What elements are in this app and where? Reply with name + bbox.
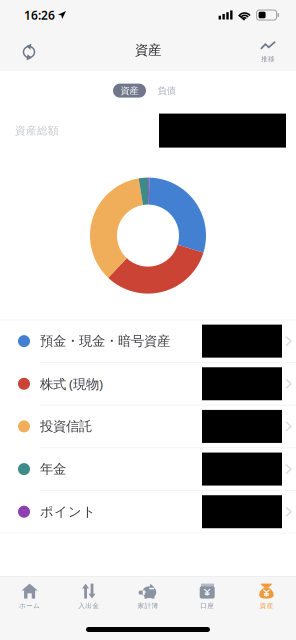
button[interactable]: 株式 (現物) xyxy=(0,363,296,405)
button[interactable]: 預金・現金・暗号資産 xyxy=(0,320,296,362)
staticText: 資産 xyxy=(120,85,138,96)
staticText: 負債 xyxy=(157,85,175,96)
button[interactable]: 負債 xyxy=(150,84,183,98)
staticText: 投資信託 xyxy=(40,418,92,435)
staticText: 資産 xyxy=(135,42,161,58)
button[interactable]: 年金 xyxy=(0,448,296,490)
staticText: 16:26 xyxy=(24,7,55,23)
staticText: 家計簿 xyxy=(137,602,158,610)
staticText: ホーム xyxy=(19,602,40,610)
button[interactable]: ホーム xyxy=(0,577,59,610)
staticText: 推移 xyxy=(261,55,275,63)
button[interactable]: Refresh xyxy=(7,30,51,70)
button[interactable]: 口座 xyxy=(178,577,237,610)
staticText: 口座 xyxy=(200,602,214,610)
staticText: 資産総額 xyxy=(15,124,59,137)
button[interactable]: 投資信託 xyxy=(0,405,296,447)
button[interactable]: 資産 xyxy=(237,577,296,610)
button[interactable]: 資産 xyxy=(113,84,146,98)
button[interactable]: 入出金 xyxy=(59,577,118,610)
button[interactable]: 推移 xyxy=(246,30,290,70)
staticText: 資産 xyxy=(259,602,273,610)
button[interactable]: ポイント xyxy=(0,491,296,533)
button[interactable]: 家計簿 xyxy=(118,577,178,610)
staticText: 株式 (現物) xyxy=(40,375,103,393)
staticText: 預金・現金・暗号資産 xyxy=(40,333,170,349)
staticText: 年金 xyxy=(40,461,66,477)
staticText: 入出金 xyxy=(78,602,99,610)
staticText: ポイント xyxy=(40,503,96,520)
